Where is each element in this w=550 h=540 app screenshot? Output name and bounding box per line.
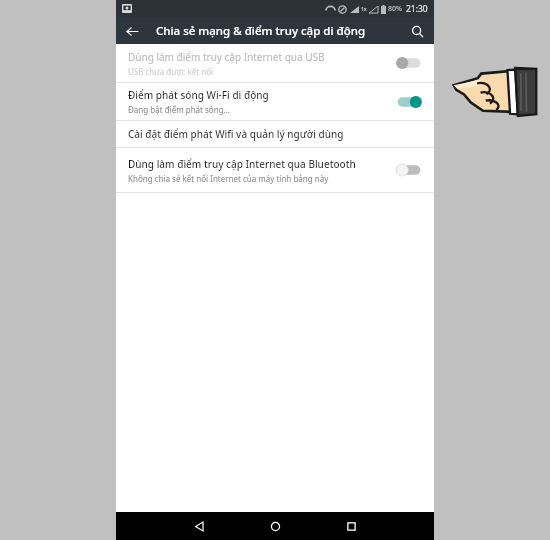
staticText: Dùng làm điểm truy cập Internet qua USB	[128, 50, 325, 64]
button[interactable]: Recents	[340, 515, 362, 537]
button[interactable]: Dùng làm điểm truy cập Internet qua Blue…	[116, 148, 434, 192]
staticText: Không chia sẻ kết nối Internet của máy t…	[128, 173, 329, 184]
staticText: 80%	[388, 4, 402, 14]
staticText: Chia sẻ mạng & điểm truy cập di động	[156, 23, 366, 39]
staticText: Đang bật điểm phát sóng...	[128, 104, 231, 115]
button[interactable]: Toggle	[394, 162, 424, 178]
staticText: 1x	[361, 6, 367, 13]
button[interactable]: Toggle	[394, 94, 424, 110]
button[interactable]: Home	[264, 515, 286, 537]
staticText: Dùng làm điểm truy cập Internet qua Blue…	[128, 157, 356, 171]
staticText: Cài đặt điểm phát Wifi và quản lý người …	[128, 127, 344, 141]
staticText: Điểm phát sóng Wi-Fi di động	[128, 88, 269, 102]
staticText: USB chưa được kết nối	[128, 66, 214, 77]
button[interactable]: Toggle	[394, 55, 424, 71]
staticText: 21:30	[406, 3, 428, 15]
button[interactable]: Điểm phát sóng Wi-Fi di động	[116, 83, 434, 120]
button[interactable]: Dùng làm điểm truy cập Internet qua USB	[116, 44, 434, 82]
button[interactable]: Cài đặt điểm phát Wifi và quản lý người …	[116, 121, 434, 147]
button[interactable]: Back	[188, 515, 210, 537]
button[interactable]: Search	[405, 19, 429, 43]
button[interactable]: Back	[120, 19, 144, 43]
